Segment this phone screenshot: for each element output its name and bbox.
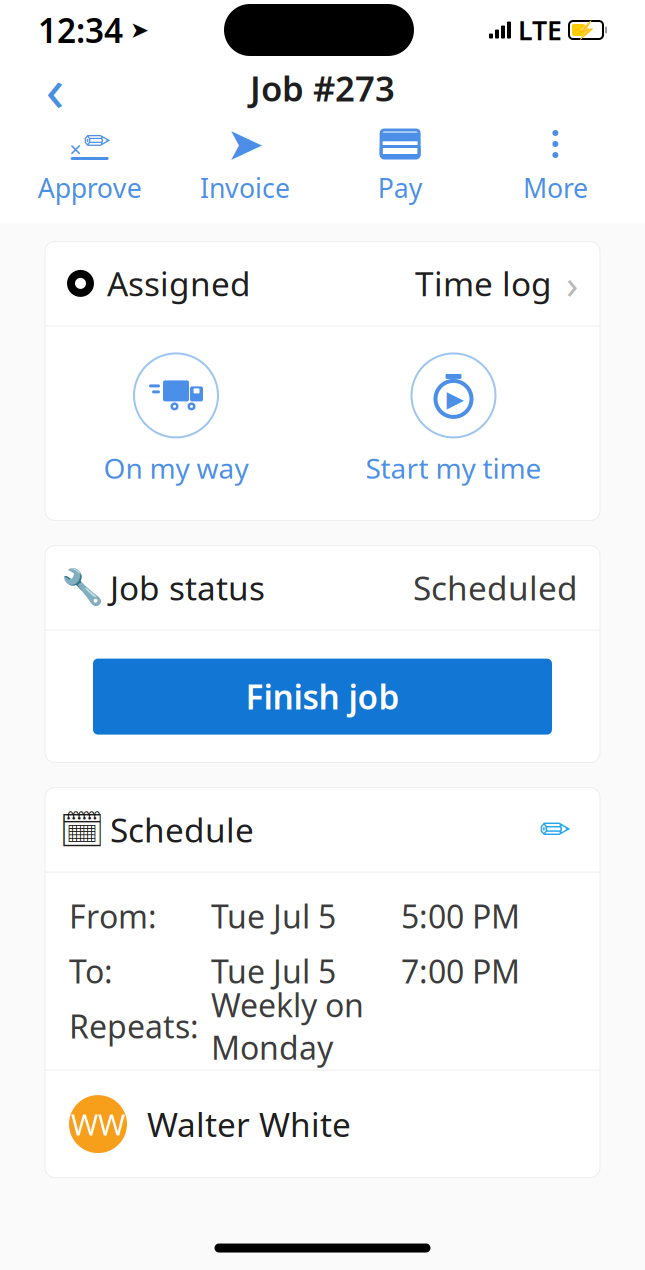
button[interactable]: ➤ <box>167 120 322 211</box>
button[interactable]: On my way <box>103 353 248 487</box>
staticText: Assigned <box>107 261 251 306</box>
staticText: Walter White <box>147 1102 351 1146</box>
staticText: Schedule <box>110 807 254 852</box>
button[interactable]: More <box>478 120 633 211</box>
staticText: To: <box>69 950 113 992</box>
button[interactable]: Back <box>26 62 84 114</box>
staticText: ✏︎ <box>539 808 570 851</box>
staticText: 🗓 <box>59 809 105 850</box>
staticText: From: <box>69 895 157 937</box>
staticText: 5:00 PM <box>401 895 520 937</box>
staticText: On my way <box>103 449 248 487</box>
staticText: 🔧 <box>60 568 103 607</box>
staticText: ‹ <box>45 47 64 129</box>
staticText: 7:00 PM <box>401 950 520 992</box>
staticText: Tue Jul 5 <box>211 950 336 992</box>
staticText: WW <box>71 1105 125 1144</box>
staticText: ➤ <box>130 17 149 43</box>
button[interactable]: Pay <box>322 120 478 211</box>
staticText: ⚡ <box>575 20 597 40</box>
staticText: ➤ <box>226 118 264 170</box>
staticText: Weekly on Monday <box>211 984 364 1069</box>
button[interactable]: WW <box>45 1071 600 1178</box>
button[interactable]: ✕ <box>12 120 167 211</box>
staticText: ✕ <box>69 141 82 159</box>
button[interactable]: ▶ <box>365 353 541 487</box>
staticText: Job status <box>110 565 265 610</box>
button[interactable]: 🔧 <box>45 546 600 630</box>
staticText: More <box>523 170 588 205</box>
staticText: › <box>566 257 578 310</box>
staticText: Invoice <box>200 170 290 205</box>
button[interactable]: Edit schedule <box>532 807 578 853</box>
staticText: Repeats: <box>69 1005 199 1047</box>
staticText: LTE <box>518 12 562 48</box>
staticText: 12:34 <box>38 8 123 52</box>
staticText: Finish job <box>245 674 399 719</box>
staticText: Time log <box>415 261 552 306</box>
button[interactable]: Finish job <box>93 659 552 735</box>
staticText: Job #273 <box>250 65 395 111</box>
staticText: Scheduled <box>413 565 578 610</box>
staticText: Tue Jul 5 <box>211 895 336 937</box>
staticText: ▶ <box>446 386 463 412</box>
button[interactable]: Assigned <box>45 241 600 325</box>
staticText: Approve <box>38 170 142 205</box>
staticText: ✏︎ <box>84 123 111 159</box>
staticText: Start my time <box>365 449 541 487</box>
staticText: Pay <box>378 170 423 205</box>
